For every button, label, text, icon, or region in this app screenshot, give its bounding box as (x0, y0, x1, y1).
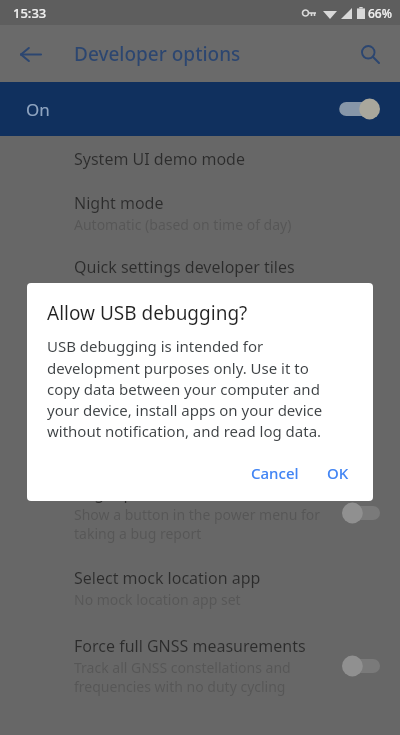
button[interactable]: Toggle off (340, 653, 386, 679)
button[interactable]: OK (317, 457, 359, 489)
staticText: Show a button in the power menu for taki… (74, 505, 321, 543)
button[interactable]: On (0, 82, 400, 136)
staticText: Track all GNSS constellations and freque… (74, 658, 291, 696)
staticText: Allow USB debugging? (47, 300, 248, 326)
button[interactable]: Bug report shortcut (0, 476, 400, 545)
button[interactable]: System UI demo mode (0, 142, 400, 172)
staticText: USB debugging is intended for developmen… (47, 336, 323, 441)
staticText: Automatic (based on time of day) (74, 215, 292, 234)
staticText: No mock location app set (74, 590, 241, 609)
button[interactable]: Toggle on (336, 96, 382, 122)
staticText: Quick settings developer tiles (74, 256, 295, 278)
staticText: Select mock location app (74, 567, 261, 589)
staticText: Cancel (251, 463, 299, 483)
staticText: Bug report shortcut (74, 482, 223, 504)
staticText: 66% (368, 5, 392, 21)
button[interactable]: Cancel (241, 457, 309, 489)
staticText: Force full GNSS measurements (74, 635, 306, 657)
staticText: Night mode (74, 192, 164, 214)
button[interactable]: Night mode (0, 172, 400, 236)
button[interactable]: Select mock location app (0, 545, 400, 611)
staticText: System UI demo mode (74, 148, 245, 170)
button[interactable]: Back (10, 34, 50, 74)
button[interactable]: Quick settings developer tiles (0, 236, 400, 280)
staticText: On (26, 98, 50, 121)
staticText: 15:33 (13, 4, 47, 22)
button[interactable]: Search (350, 34, 390, 74)
staticText: OK (327, 463, 349, 483)
button[interactable]: Force full GNSS measurements (0, 611, 400, 698)
staticText: Developer options (74, 41, 241, 67)
button[interactable]: Toggle off (340, 500, 386, 526)
